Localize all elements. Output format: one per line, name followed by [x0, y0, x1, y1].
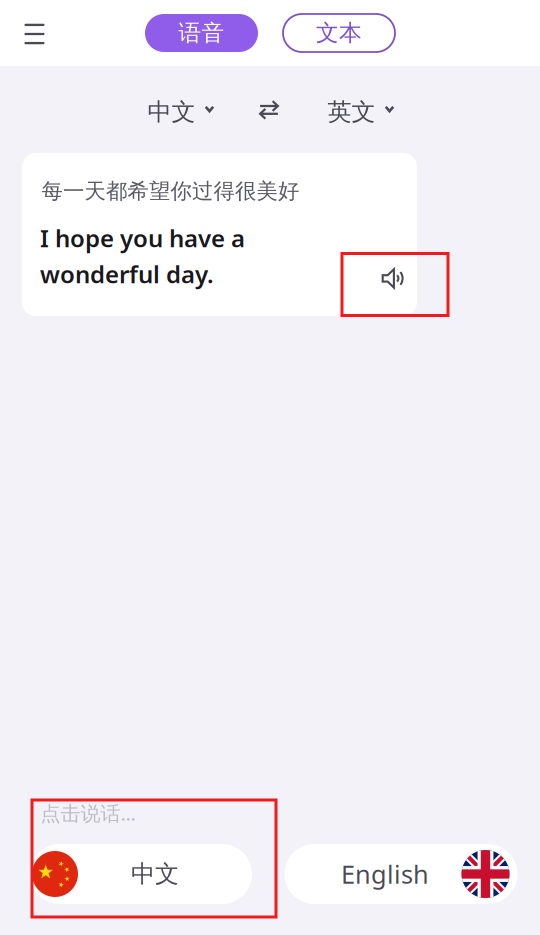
staticText: English — [341, 857, 429, 891]
button[interactable]: 英文 — [327, 90, 394, 134]
staticText: 文本 — [316, 19, 362, 47]
staticText: 每一天都希望你过得很美好 — [41, 178, 299, 204]
button[interactable]: 语音 — [145, 14, 258, 52]
button[interactable]: 中文 — [147, 90, 214, 134]
staticText: 中文 — [147, 97, 195, 127]
button[interactable]: Play audio — [371, 256, 415, 300]
button[interactable]: English — [284, 844, 517, 904]
button[interactable]: 中文 — [30, 844, 252, 904]
staticText: 英文 — [327, 97, 375, 127]
staticText: wonderful day. — [40, 258, 214, 290]
button[interactable]: 文本 — [283, 14, 395, 52]
staticText: 中文 — [131, 859, 179, 889]
staticText: I hope you have a — [40, 222, 245, 254]
staticText: 语音 — [178, 19, 224, 47]
button[interactable]: Swap languages — [247, 88, 291, 132]
staticText: 点击说话... — [40, 800, 135, 826]
button[interactable]: Menu — [12, 12, 56, 56]
